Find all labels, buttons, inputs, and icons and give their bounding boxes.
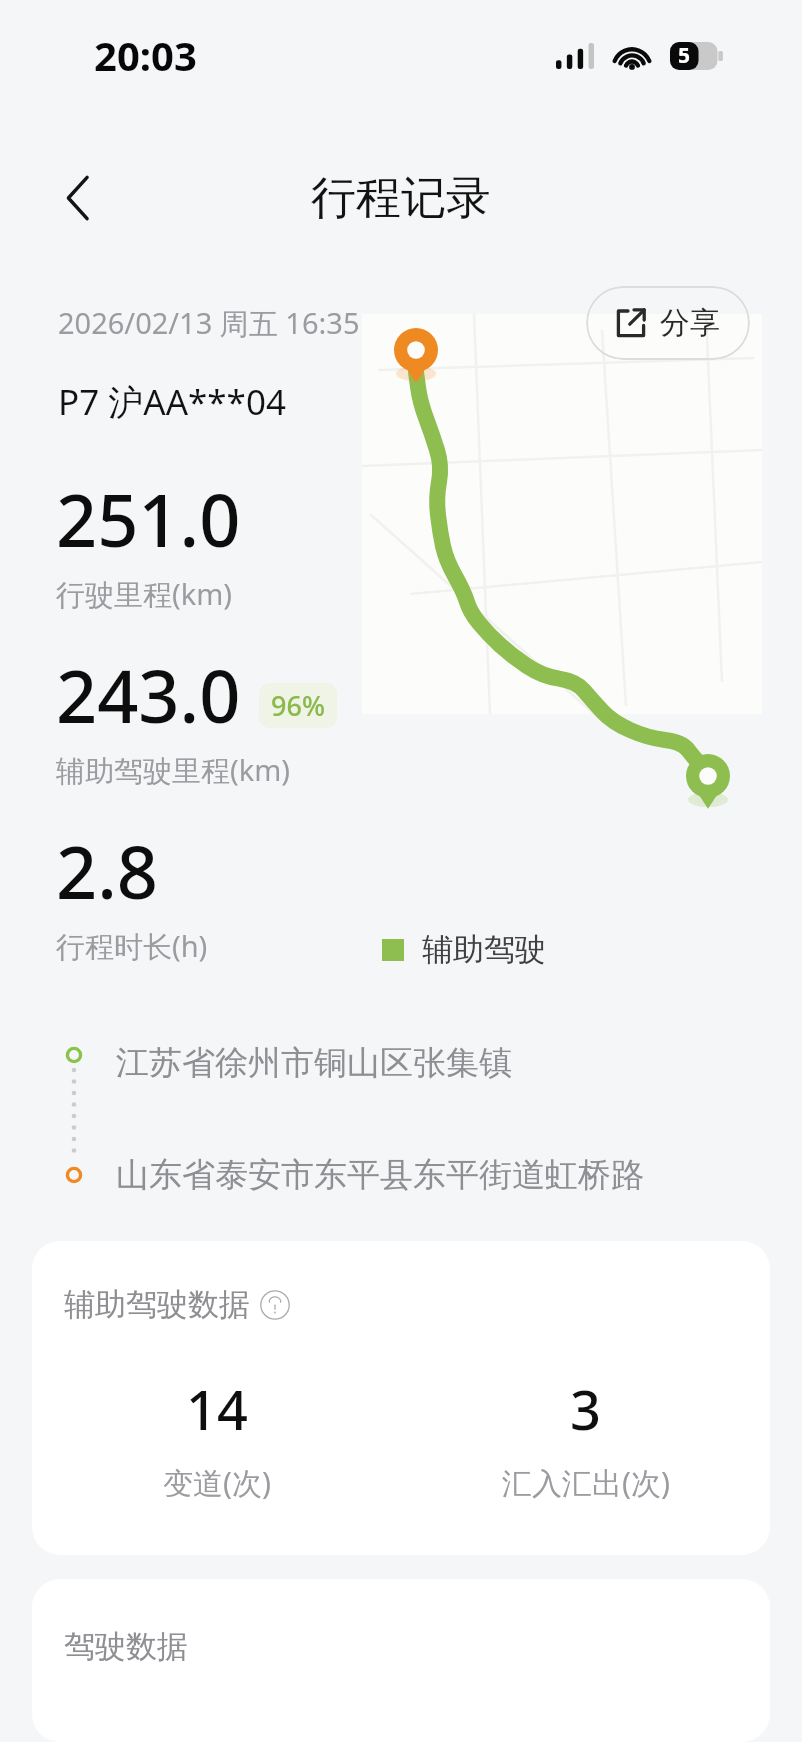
staticText: 江苏省徐州市铜山区张集镇	[116, 1042, 512, 1084]
staticText: 行程时长(h)	[56, 926, 208, 966]
staticText: 行程记录	[311, 170, 491, 227]
staticText: 驾驶数据	[64, 1627, 188, 1666]
staticText: 辅助驾驶里程(km)	[56, 750, 291, 790]
staticText: 行驶里程(km)	[56, 574, 233, 614]
staticText: P7 沪AA***04	[58, 378, 286, 426]
staticText: 3	[570, 1372, 601, 1446]
staticText: 分享	[660, 304, 720, 342]
staticText: 山东省泰安市东平县东平街道虹桥路	[116, 1154, 644, 1196]
button[interactable]: 驾驶数据	[32, 1579, 770, 1742]
staticText: 辅助驾驶	[422, 930, 546, 969]
button[interactable]: Back	[32, 152, 124, 244]
staticText: 251.0	[56, 470, 241, 568]
staticText: 14	[186, 1372, 248, 1446]
staticText: 5	[678, 41, 691, 70]
staticText: 2026/02/13 周五 16:35	[58, 303, 360, 343]
staticText: 20:03	[94, 28, 197, 82]
staticText: 汇入汇出(次)	[502, 1462, 670, 1503]
staticText: 96%	[271, 687, 325, 724]
staticText: 243.0	[56, 646, 241, 744]
staticText: 辅助驾驶数据	[64, 1285, 250, 1324]
button[interactable]: 分享	[586, 286, 750, 360]
staticText: 变道(次)	[163, 1462, 271, 1503]
button[interactable]: 辅助驾驶数据	[32, 1241, 770, 1555]
staticText: 2.8	[56, 822, 158, 920]
